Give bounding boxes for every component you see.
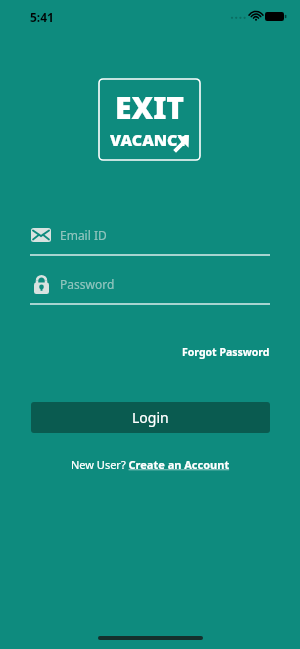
staticText: Password: [60, 276, 115, 292]
other: Email: [30, 224, 52, 246]
other: Password: [30, 273, 52, 295]
staticText: Login: [132, 408, 169, 427]
staticText: EXIT: [115, 87, 185, 128]
staticText: 5:41: [30, 9, 54, 25]
button[interactable]: New User? Create an Account: [71, 457, 230, 472]
staticText: Email ID: [60, 227, 107, 243]
button[interactable]: Forgot Password: [180, 343, 270, 361]
button[interactable]: Email: [30, 224, 270, 256]
staticText: Forgot Password: [182, 345, 270, 359]
button[interactable]: Login: [31, 402, 270, 433]
staticText: New User? Create an Account: [71, 457, 230, 472]
staticText: VACANCY: [110, 129, 189, 151]
button[interactable]: Password: [30, 273, 270, 305]
